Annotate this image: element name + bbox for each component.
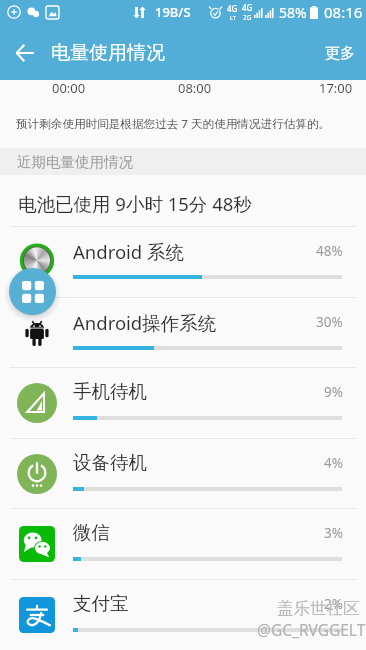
button[interactable]: 微信 bbox=[0, 508, 366, 579]
staticText: 58% bbox=[279, 3, 307, 22]
staticText: 9% bbox=[324, 383, 343, 401]
staticText: 设备待机 bbox=[73, 451, 147, 474]
staticText: 电量使用情况 bbox=[51, 41, 165, 65]
button[interactable]: Android 系统 bbox=[0, 226, 366, 297]
staticText: 08:00 bbox=[178, 79, 212, 97]
staticText: 17:00 bbox=[319, 79, 353, 97]
button[interactable]: 支付宝 bbox=[0, 579, 366, 650]
staticText: 4G bbox=[227, 3, 238, 14]
button[interactable]: Apps bbox=[9, 268, 56, 315]
staticText: 盖乐世社区 bbox=[277, 598, 360, 619]
staticText: 支付宝 bbox=[73, 592, 129, 615]
staticText: 预计剩余使用时间是根据您过去 7 天的使用情况进行估算的。 bbox=[16, 116, 331, 132]
staticText: Android 系统 bbox=[73, 239, 185, 264]
staticText: 4G bbox=[242, 2, 253, 13]
staticText: 08:16 bbox=[324, 2, 363, 22]
staticText: 48% bbox=[316, 242, 343, 260]
staticText: 19B/S bbox=[155, 3, 191, 21]
staticText: 2% bbox=[324, 595, 343, 613]
button[interactable]: Back bbox=[5, 33, 45, 73]
staticText: 微信 bbox=[73, 521, 110, 544]
staticText: 电池已使用 9小时 15分 48秒 bbox=[18, 191, 252, 216]
button[interactable]: 手机待机 bbox=[0, 367, 366, 438]
button[interactable]: 设备待机 bbox=[0, 438, 366, 509]
staticText: @GC_RVGGELT bbox=[257, 619, 366, 640]
staticText: LT bbox=[230, 14, 236, 21]
button[interactable]: Android操作系统 bbox=[0, 297, 366, 368]
staticText: 3% bbox=[324, 524, 343, 542]
staticText: 30% bbox=[316, 313, 343, 331]
staticText: 近期电量使用情况 bbox=[17, 153, 133, 171]
staticText: 更多 bbox=[325, 44, 355, 63]
staticText: Android操作系统 bbox=[73, 310, 217, 335]
staticText: 00:00 bbox=[52, 79, 86, 97]
staticText: 4% bbox=[324, 454, 343, 472]
staticText: 2G bbox=[243, 13, 252, 22]
button[interactable]: 更多 bbox=[318, 38, 362, 69]
staticText: 手机待机 bbox=[73, 380, 147, 403]
